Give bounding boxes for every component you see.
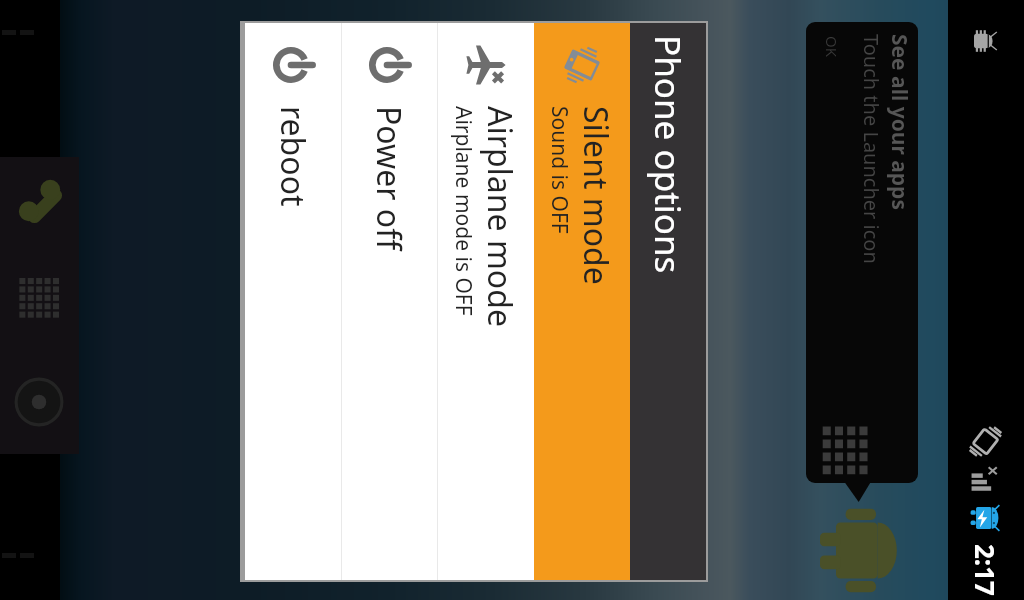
staticText: Phone options bbox=[644, 35, 692, 274]
button[interactable]: Phone bbox=[10, 171, 80, 241]
staticText: Sound is OFF bbox=[545, 106, 574, 234]
staticText: Airplane mode is OFF bbox=[449, 106, 478, 316]
staticText: Airplane mode bbox=[478, 106, 522, 327]
button[interactable]: Browser bbox=[4, 367, 74, 437]
button[interactable]: reboot bbox=[245, 23, 341, 580]
button[interactable]: Power off bbox=[342, 23, 437, 580]
staticText: See all your apps bbox=[885, 34, 914, 210]
button[interactable]: Silent mode bbox=[534, 23, 630, 580]
button[interactable]: See all your apps bbox=[806, 22, 918, 483]
staticText: OK bbox=[822, 36, 842, 58]
button[interactable]: All apps bbox=[8, 267, 70, 329]
button[interactable]: Airplane mode bbox=[438, 23, 534, 580]
staticText: Power off bbox=[367, 106, 411, 251]
staticText: reboot bbox=[271, 106, 315, 207]
staticText: Touch the Launcher icon bbox=[858, 34, 885, 264]
staticText: Silent mode bbox=[574, 106, 618, 285]
staticText: 2:17 bbox=[968, 544, 1003, 596]
